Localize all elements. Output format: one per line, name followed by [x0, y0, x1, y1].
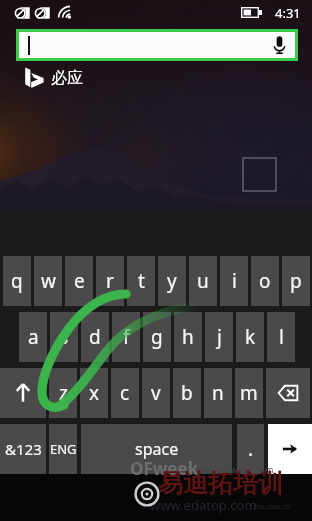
staticText: 4:31	[275, 4, 301, 22]
staticText: e	[74, 268, 85, 294]
staticText: s	[59, 324, 69, 350]
staticText: www.edatop.com	[150, 496, 257, 514]
staticText: x	[89, 380, 100, 406]
staticText: g	[151, 324, 163, 350]
button[interactable]: .	[237, 424, 264, 474]
staticText: z	[59, 380, 68, 406]
button[interactable]: d	[81, 312, 109, 362]
staticText: n	[212, 380, 224, 406]
staticText: v	[151, 380, 161, 406]
staticText: ENG	[50, 440, 77, 458]
staticText: b	[181, 380, 193, 406]
staticText: k	[245, 324, 256, 350]
button[interactable]: ENG	[49, 424, 77, 474]
staticText: 易迪拓培训	[158, 468, 283, 499]
staticText: y	[167, 268, 177, 294]
button[interactable]: z	[49, 368, 77, 418]
staticText: m	[240, 380, 258, 406]
button[interactable]: v	[142, 368, 170, 418]
button[interactable]: q	[3, 256, 31, 306]
button[interactable]: Shift	[0, 368, 46, 418]
button[interactable]: a	[19, 312, 47, 362]
staticText: OFweek	[130, 457, 199, 480]
staticText: w	[41, 268, 56, 294]
staticText: q	[11, 268, 23, 294]
staticText: &123	[5, 439, 42, 459]
button[interactable]: w	[34, 256, 62, 306]
staticText: c	[120, 380, 130, 406]
button[interactable]: h	[174, 312, 202, 362]
button[interactable]: j	[205, 312, 233, 362]
button[interactable]: Enter	[268, 424, 312, 474]
staticText: www.ofweek.com	[199, 463, 274, 475]
staticText: 必应	[51, 68, 83, 88]
staticText: zou.com.cn	[253, 502, 291, 512]
button[interactable]: o	[251, 256, 279, 306]
staticText: d	[89, 324, 101, 350]
button[interactable]: space	[81, 424, 232, 474]
button[interactable]: p	[282, 256, 310, 306]
button[interactable]: s	[50, 312, 78, 362]
staticText: space	[135, 438, 179, 460]
button[interactable]: k	[236, 312, 264, 362]
staticText: f	[123, 324, 130, 350]
staticText: j	[217, 324, 222, 350]
staticText: t	[138, 268, 145, 294]
button[interactable]: n	[204, 368, 232, 418]
button[interactable]: Tile	[243, 158, 276, 191]
button[interactable]: m	[235, 368, 263, 418]
button[interactable]: x	[80, 368, 108, 418]
staticText: p	[290, 268, 302, 294]
staticText: a	[28, 324, 39, 350]
staticText: i	[232, 268, 237, 294]
button[interactable]: g	[143, 312, 171, 362]
button[interactable]: i	[220, 256, 248, 306]
button[interactable]: 必应	[24, 67, 83, 88]
button[interactable]: e	[65, 256, 93, 306]
button[interactable]: b	[173, 368, 201, 418]
staticText: l	[279, 324, 284, 350]
button[interactable]: c	[111, 368, 139, 418]
staticText: h	[182, 324, 194, 350]
button[interactable]: t	[127, 256, 155, 306]
button[interactable]: r	[96, 256, 124, 306]
button[interactable]: &123	[0, 424, 46, 474]
button[interactable]	[19, 32, 295, 58]
button[interactable]: y	[158, 256, 186, 306]
staticText: .	[248, 436, 254, 462]
button[interactable]: u	[189, 256, 217, 306]
staticText: r	[106, 268, 114, 294]
button[interactable]: Backspace	[266, 368, 310, 418]
button[interactable]: f	[112, 312, 140, 362]
button[interactable]: l	[267, 312, 295, 362]
staticText: u	[197, 268, 209, 294]
staticText: o	[259, 268, 271, 294]
